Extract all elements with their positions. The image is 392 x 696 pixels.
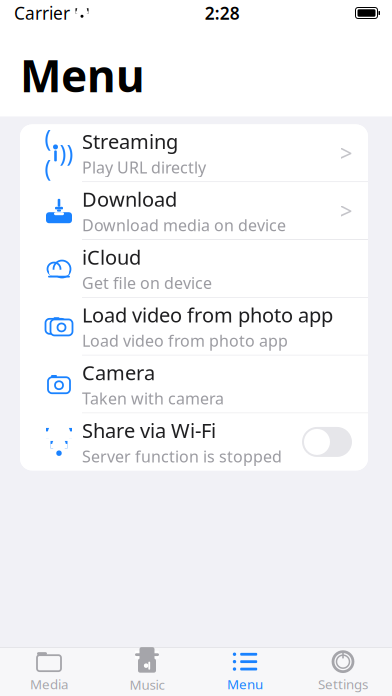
button[interactable]: Menu [196, 648, 294, 696]
staticText: > [339, 138, 352, 168]
staticText: Music [129, 676, 164, 693]
button[interactable]: iCloud [20, 240, 368, 297]
staticText: (( [44, 123, 51, 183]
button[interactable]: Load video from photo app [20, 298, 368, 355]
staticText: Carrier [14, 1, 70, 24]
button[interactable]: Music [98, 648, 196, 696]
staticText: Get file on device [82, 272, 212, 293]
button[interactable]: Share via Wi-Fi [20, 413, 368, 470]
staticText: iCloud [82, 244, 141, 270]
button[interactable]: Download [20, 182, 368, 239]
button[interactable]: (( [20, 124, 368, 181]
staticText: Menu [20, 46, 145, 104]
button[interactable]: Share via Wi-Fi toggle [302, 427, 352, 457]
staticText: Download [82, 186, 177, 212]
staticText: Server function is stopped [82, 446, 282, 467]
staticText: Load video from photo app [82, 330, 288, 351]
staticText: Media [30, 675, 68, 693]
staticText: Play URL directly [82, 157, 206, 178]
staticText: Menu [227, 675, 263, 693]
staticText: 2:28 [205, 1, 240, 24]
staticText: Download media on device [82, 214, 286, 236]
staticText: > [339, 196, 352, 226]
staticText: Taken with camera [82, 388, 224, 409]
button[interactable]: Media [0, 648, 98, 696]
staticText: Share via Wi-Fi [82, 417, 216, 444]
staticText: Settings [318, 675, 368, 693]
button[interactable]: Camera [20, 356, 368, 413]
button[interactable]: Settings [294, 648, 392, 696]
staticText: Load video from photo app [82, 301, 333, 328]
staticText: )) [59, 138, 73, 168]
staticText: Streaming [82, 128, 178, 155]
staticText: Camera [82, 359, 155, 386]
